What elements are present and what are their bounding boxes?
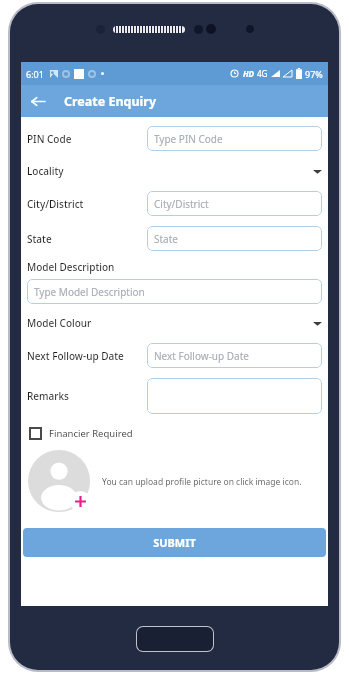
- other: Open Locality options: [313, 167, 322, 176]
- staticText: PIN Code: [27, 132, 147, 146]
- staticText: Financier Required: [49, 427, 133, 440]
- button[interactable]: Upload profile picture: [28, 450, 92, 514]
- staticText: Model Description: [27, 260, 115, 274]
- staticText: Model Colour: [27, 316, 92, 330]
- button[interactable]: Type PIN Code: [147, 126, 322, 151]
- staticText: Next Follow-up Date: [154, 349, 249, 363]
- staticText: State: [27, 232, 147, 246]
- button[interactable]: City/District: [147, 191, 322, 216]
- staticText: Next Follow-up Date: [27, 349, 147, 363]
- button[interactable]: [147, 378, 322, 414]
- button[interactable]: Locality: [21, 156, 328, 186]
- staticText: Type Model Description: [34, 285, 145, 299]
- button[interactable]: State: [147, 226, 322, 251]
- button[interactable]: Type Model Description: [27, 279, 322, 304]
- staticText: 6:01: [26, 68, 44, 80]
- staticText: 4G: [257, 68, 268, 79]
- staticText: 97%: [305, 68, 323, 80]
- other: Open Model Colour options: [313, 319, 322, 328]
- button[interactable]: Model Colour: [21, 308, 328, 338]
- button[interactable]: SUBMIT: [23, 528, 326, 557]
- button[interactable]: Back: [21, 85, 53, 117]
- staticText: Type PIN Code: [154, 132, 223, 146]
- staticText: State: [154, 232, 178, 246]
- button[interactable]: Financier Required: [29, 427, 133, 440]
- staticText: City/District: [27, 197, 147, 211]
- staticText: City/District: [154, 197, 209, 211]
- staticText: Create Enquiry: [64, 93, 157, 110]
- staticText: HD: [243, 68, 255, 79]
- staticText: Remarks: [27, 389, 147, 403]
- button[interactable]: Next Follow-up Date: [147, 343, 322, 368]
- staticText: SUBMIT: [153, 535, 196, 550]
- staticText: Locality: [27, 164, 64, 178]
- staticText: You can upload profile picture on click …: [102, 476, 302, 488]
